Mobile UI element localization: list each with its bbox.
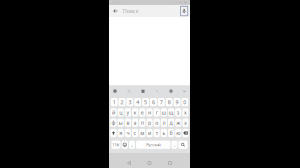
button[interactable]: Stickers [126, 88, 132, 94]
staticText: 6 [152, 99, 155, 106]
button[interactable]: з [175, 108, 181, 116]
staticText: 5 [144, 99, 147, 106]
staticText: ф [111, 119, 115, 126]
button[interactable]: Русский [136, 141, 170, 149]
button[interactable]: 2 [119, 98, 125, 106]
button[interactable]: Recent apps [161, 158, 178, 168]
button[interactable]: 4 [134, 98, 141, 106]
button[interactable]: у [125, 108, 131, 116]
staticText: б [170, 129, 173, 137]
button[interactable]: 8 [166, 98, 172, 106]
staticText: а [134, 119, 137, 126]
button[interactable]: в [125, 119, 131, 127]
staticText: 8 [168, 99, 171, 106]
button[interactable]: Google [112, 88, 118, 94]
button[interactable]: , [129, 141, 135, 149]
staticText: г [156, 109, 158, 116]
button[interactable]: 3 [126, 98, 133, 106]
button[interactable]: Search [178, 141, 188, 149]
staticText: м [140, 129, 144, 137]
staticText: о [155, 119, 158, 126]
button[interactable]: . [171, 141, 177, 149]
button[interactable]: ы [118, 119, 124, 127]
button[interactable]: о [154, 119, 160, 127]
staticText: щ [169, 109, 174, 116]
staticText: ь [162, 129, 165, 137]
staticText: х [184, 109, 187, 116]
staticText: з [177, 109, 180, 116]
staticText: л [162, 119, 165, 126]
button[interactable]: л [161, 119, 167, 127]
button[interactable]: 0 [181, 98, 188, 106]
staticText: ч [126, 129, 129, 137]
button[interactable]: г [154, 108, 160, 116]
button[interactable]: ь [161, 129, 167, 137]
staticText: у [126, 109, 129, 116]
button[interactable]: ?1# [111, 141, 121, 149]
button[interactable]: Settings [168, 88, 174, 94]
button[interactable]: ю [175, 129, 181, 137]
staticText: 3 [128, 99, 131, 106]
button[interactable]: я [118, 129, 124, 137]
staticText: 9 [175, 99, 178, 106]
button[interactable]: и [146, 129, 153, 137]
button[interactable]: б [168, 129, 174, 137]
button[interactable]: т [154, 129, 160, 137]
button[interactable]: ч [125, 129, 131, 137]
staticText: р [148, 119, 151, 126]
staticText: Поиск [123, 7, 139, 15]
button[interactable]: Voice search [180, 6, 188, 16]
button[interactable]: й [110, 108, 117, 116]
button[interactable]: д [168, 119, 174, 127]
button[interactable]: р [146, 119, 153, 127]
button[interactable]: More [182, 88, 187, 94]
button[interactable]: х [182, 108, 189, 116]
staticText: я [119, 129, 122, 137]
staticText: 0 [183, 99, 186, 106]
staticText: 4 [136, 99, 139, 106]
staticText: ю [176, 129, 180, 137]
button[interactable]: Home [141, 158, 158, 168]
button[interactable]: Clipboard [140, 88, 146, 94]
staticText: ш [161, 109, 166, 116]
button[interactable]: Shift [110, 129, 117, 137]
button[interactable]: с [132, 129, 138, 137]
staticText: ж [176, 119, 180, 126]
button[interactable]: ф [110, 119, 117, 127]
button[interactable]: Backspace [182, 129, 189, 137]
staticText: 7 [160, 99, 163, 106]
button[interactable]: щ [168, 108, 174, 116]
button[interactable]: 6 [150, 98, 157, 106]
button[interactable]: 7 [158, 98, 165, 106]
staticText: . [174, 141, 175, 148]
staticText: э [184, 119, 187, 126]
button[interactable]: э [182, 119, 189, 127]
button[interactable]: 9 [174, 98, 180, 106]
staticText: 2 [120, 99, 123, 106]
staticText: к [134, 109, 137, 116]
button[interactable]: 1 [111, 98, 118, 106]
button[interactable]: к [132, 108, 138, 116]
staticText: е [141, 109, 144, 116]
button[interactable]: ц [118, 108, 124, 116]
button[interactable]: н [146, 108, 153, 116]
button[interactable]: Back [112, 5, 119, 17]
button[interactable]: м [139, 129, 145, 137]
button[interactable]: ш [161, 108, 167, 116]
staticText: Русский [146, 142, 160, 147]
button[interactable]: Emoji [122, 141, 128, 149]
button[interactable]: ж [175, 119, 181, 127]
button[interactable]: Back [120, 158, 137, 168]
staticText: и [148, 129, 151, 137]
staticText: ц [119, 109, 122, 116]
button[interactable]: е [139, 108, 145, 116]
staticText: т [156, 129, 158, 137]
button[interactable]: 5 [142, 98, 149, 106]
button[interactable]: а [132, 119, 138, 127]
staticText: в [126, 119, 129, 126]
staticText: й [112, 109, 115, 116]
button[interactable]: Voice typing [154, 88, 160, 94]
button[interactable]: п [139, 119, 145, 127]
staticText: д [170, 119, 173, 126]
